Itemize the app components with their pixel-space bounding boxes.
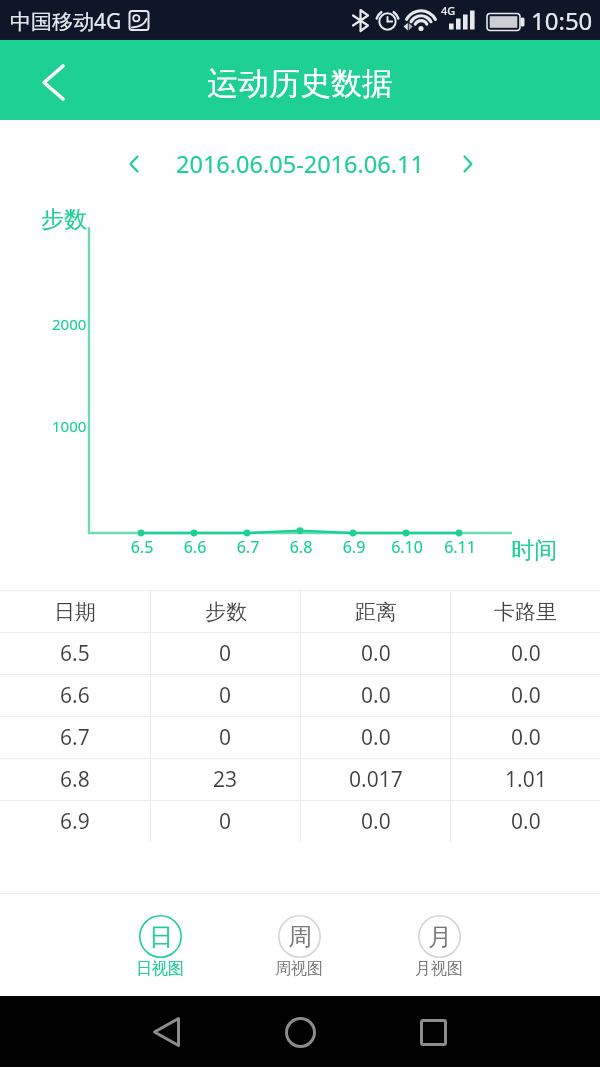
staticText: 1000: [52, 416, 87, 436]
staticText: 0.0: [361, 639, 391, 668]
button[interactable]: Next week: [444, 138, 492, 190]
button[interactable]: Previous week: [110, 138, 158, 190]
staticText: 0.0: [511, 723, 541, 752]
staticText: 2016.06.05-2016.06.11: [176, 148, 424, 180]
staticText: 0.0: [511, 639, 541, 668]
staticText: 6.8: [60, 765, 90, 794]
staticText: 步数: [41, 205, 87, 234]
staticText: 运动历史数据: [207, 64, 393, 103]
staticText: 0: [219, 723, 232, 752]
staticText: 月: [428, 922, 452, 952]
staticText: 4G: [441, 3, 456, 18]
staticText: 10:50: [531, 4, 593, 37]
button[interactable]: 月: [399, 915, 479, 979]
staticText: 6.6: [171, 536, 219, 558]
staticText: 6.7: [60, 723, 90, 752]
staticText: 时间: [511, 536, 557, 565]
staticText: 0.0: [511, 681, 541, 710]
staticText: 周视图: [275, 959, 323, 979]
staticText: 6.9: [60, 807, 90, 836]
staticText: 0.0: [361, 723, 391, 752]
staticText: 6.6: [60, 681, 90, 710]
button[interactable]: Back: [20, 40, 86, 120]
staticText: 6.9: [330, 536, 378, 558]
staticText: 卡路里: [494, 599, 557, 625]
staticText: 2000: [52, 314, 87, 334]
staticText: 中国移动4G: [10, 7, 122, 36]
staticText: 日: [149, 922, 173, 952]
staticText: 日期: [54, 599, 96, 625]
staticText: 0.0: [361, 807, 391, 836]
staticText: 0.017: [349, 765, 403, 794]
button[interactable]: Home: [270, 1002, 330, 1062]
button[interactable]: 周: [259, 915, 339, 979]
button[interactable]: Back: [136, 1002, 196, 1062]
staticText: 月视图: [415, 959, 463, 979]
staticText: 6.7: [224, 536, 272, 558]
staticText: 23: [213, 765, 238, 794]
staticText: 周: [288, 922, 312, 952]
staticText: 0: [219, 639, 232, 668]
button[interactable]: 日: [120, 915, 200, 979]
staticText: 6.11: [436, 536, 484, 558]
staticText: 0: [219, 681, 232, 710]
button[interactable]: Recent apps: [403, 1002, 463, 1062]
staticText: 6.10: [383, 536, 431, 558]
staticText: 0.0: [361, 681, 391, 710]
staticText: 6.5: [118, 536, 166, 558]
staticText: 6.8: [277, 536, 325, 558]
staticText: 日视图: [136, 959, 184, 979]
staticText: 0.0: [511, 807, 541, 836]
staticText: 0: [219, 807, 232, 836]
staticText: 6.5: [60, 639, 90, 668]
staticText: 步数: [205, 599, 247, 625]
staticText: 距离: [355, 599, 397, 625]
staticText: 1.01: [505, 765, 547, 794]
